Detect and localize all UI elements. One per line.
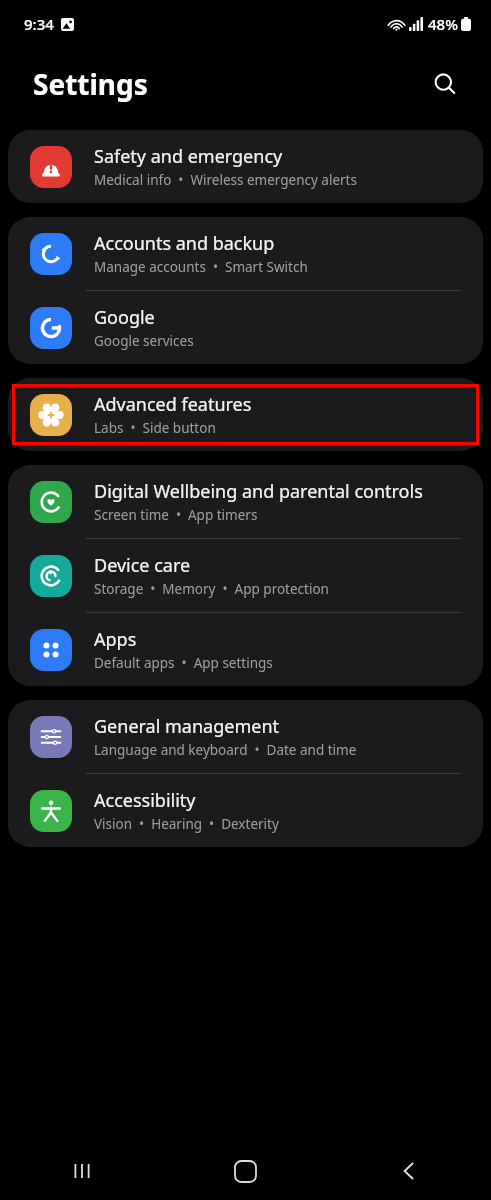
staticText: Device care (94, 553, 191, 578)
button[interactable]: Accessibility (8, 774, 483, 847)
staticText: Accessibility (94, 788, 196, 813)
staticText: Storage • Memory • App protection (94, 580, 329, 598)
staticText: Language and keyboard • Date and time (94, 741, 357, 759)
staticText: Medical info • Wireless emergency alerts (94, 171, 357, 189)
button[interactable]: Back (327, 1142, 491, 1200)
staticText: Digital Wellbeing and parental controls (94, 479, 423, 504)
button[interactable]: General management (8, 700, 483, 773)
staticText: Manage accounts • Smart Switch (94, 258, 308, 276)
staticText: Settings (33, 65, 148, 103)
staticText: Vision • Hearing • Dexterity (94, 815, 279, 833)
button[interactable]: Safety and emergency (8, 130, 483, 203)
staticText: 48% (428, 14, 458, 34)
button[interactable]: Recents (0, 1142, 163, 1200)
button[interactable]: Digital Wellbeing and parental controls (8, 465, 483, 538)
staticText: Safety and emergency (94, 144, 283, 169)
staticText: Labs • Side button (94, 419, 216, 437)
button[interactable]: Search (423, 62, 467, 106)
staticText: General management (94, 714, 280, 739)
button[interactable]: Advanced features (8, 378, 483, 451)
button[interactable]: Google (8, 291, 483, 364)
button[interactable]: Apps (8, 613, 483, 686)
staticText: Google services (94, 332, 194, 350)
staticText: Google (94, 305, 155, 330)
staticText: 9:34 (24, 14, 54, 34)
staticText: Advanced features (94, 392, 252, 417)
staticText: Default apps • App settings (94, 654, 273, 672)
staticText: Accounts and backup (94, 231, 275, 256)
staticText: Apps (94, 627, 137, 652)
staticText: Screen time • App timers (94, 506, 258, 524)
button[interactable]: Accounts and backup (8, 217, 483, 290)
button[interactable]: Device care (8, 539, 483, 612)
button[interactable]: Home (163, 1142, 327, 1200)
